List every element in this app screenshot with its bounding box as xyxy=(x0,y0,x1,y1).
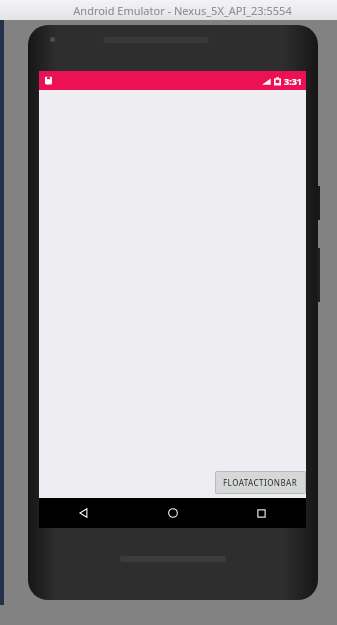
staticText: Android Emulator - Nexus_5X_API_23:5554 xyxy=(73,3,292,18)
staticText: 3:31 xyxy=(284,75,302,87)
button[interactable]: Back xyxy=(39,498,128,528)
button[interactable]: Recents xyxy=(217,498,306,528)
button[interactable]: FLOATACTIONBAR xyxy=(216,472,305,493)
staticText: FLOATACTIONBAR xyxy=(223,477,298,488)
button[interactable]: Home xyxy=(128,498,217,528)
